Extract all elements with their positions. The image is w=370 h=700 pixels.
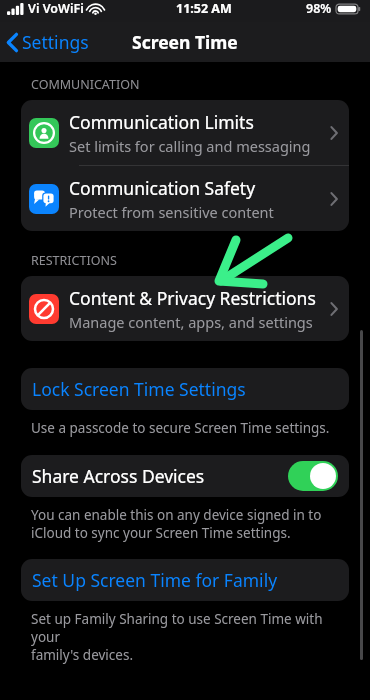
staticText: Communication Safety (69, 176, 256, 200)
staticText: 11:52 AM (176, 0, 232, 17)
button[interactable]: Set Up Screen Time for Family (21, 559, 349, 601)
staticText: Communication Limits (69, 110, 254, 134)
staticText: Set Up Screen Time for Family (32, 568, 278, 592)
button[interactable]: Share Across Devices (21, 455, 349, 497)
staticText: Protect from sensitive content (69, 202, 274, 222)
staticText: Set up Family Sharing to use Screen Time… (31, 610, 350, 664)
button[interactable]: Share Across Devices toggle, on (288, 461, 338, 491)
button[interactable]: Content & Privacy Restrictions (21, 276, 349, 341)
staticText: COMMUNICATION (31, 76, 140, 93)
staticText: Lock Screen Time Settings (32, 377, 246, 401)
staticText: Content & Privacy Restrictions (69, 286, 316, 310)
button[interactable]: Lock Screen Time Settings (21, 368, 349, 410)
staticText: You can enable this on any device signed… (31, 506, 322, 542)
staticText: Set limits for calling and messaging (69, 136, 311, 156)
button[interactable]: Settings (0, 26, 97, 58)
button[interactable]: Communication Limits (21, 100, 349, 165)
button[interactable]: Communication Safety (21, 166, 349, 231)
staticText: RESTRICTIONS (31, 252, 117, 269)
staticText: Vi VoWiFi (28, 0, 84, 17)
staticText: 98% (306, 0, 332, 17)
staticText: Screen Time (132, 30, 238, 54)
staticText: Manage content, apps, and settings (69, 312, 313, 332)
staticText: Share Across Devices (32, 464, 205, 488)
staticText: Use a passcode to secure Screen Time set… (31, 419, 330, 437)
staticText: Settings (22, 30, 89, 54)
